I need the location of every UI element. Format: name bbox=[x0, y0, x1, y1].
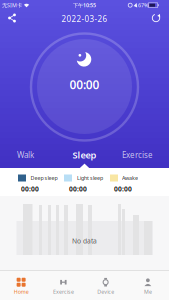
staticText: Sleep bbox=[72, 149, 96, 161]
button[interactable]: Refresh bbox=[151, 13, 161, 23]
staticText: 00:00 bbox=[70, 76, 99, 92]
staticText: 00:00 bbox=[114, 185, 132, 193]
staticText: Exercise bbox=[53, 288, 74, 295]
staticText: 无SIM卡 bbox=[2, 2, 22, 9]
button[interactable]: Share bbox=[6, 12, 17, 23]
button[interactable]: Device bbox=[84, 272, 127, 300]
button[interactable]: Walk bbox=[8, 147, 42, 163]
staticText: Exercise bbox=[122, 150, 153, 160]
staticText: Light sleep bbox=[77, 174, 103, 182]
staticText: 00:00 bbox=[69, 185, 87, 193]
button[interactable]: Me bbox=[127, 272, 169, 300]
staticText: No data bbox=[72, 237, 97, 245]
staticText: 2022-03-26 bbox=[61, 14, 107, 24]
button[interactable]: Exercise bbox=[117, 147, 157, 163]
button[interactable]: Home bbox=[0, 272, 42, 300]
staticText: Awake bbox=[122, 174, 138, 182]
button[interactable]: Exercise bbox=[42, 272, 84, 300]
button[interactable]: Sleep bbox=[66, 147, 102, 163]
staticText: Home bbox=[14, 288, 29, 295]
staticText: Me bbox=[144, 288, 152, 295]
staticText: Device bbox=[97, 288, 114, 295]
staticText: 67% bbox=[138, 2, 148, 9]
staticText: Walk bbox=[17, 150, 34, 160]
staticText: 下午10:55 bbox=[73, 2, 96, 9]
staticText: Deep sleep bbox=[30, 174, 57, 182]
staticText: 00:00 bbox=[21, 185, 39, 193]
